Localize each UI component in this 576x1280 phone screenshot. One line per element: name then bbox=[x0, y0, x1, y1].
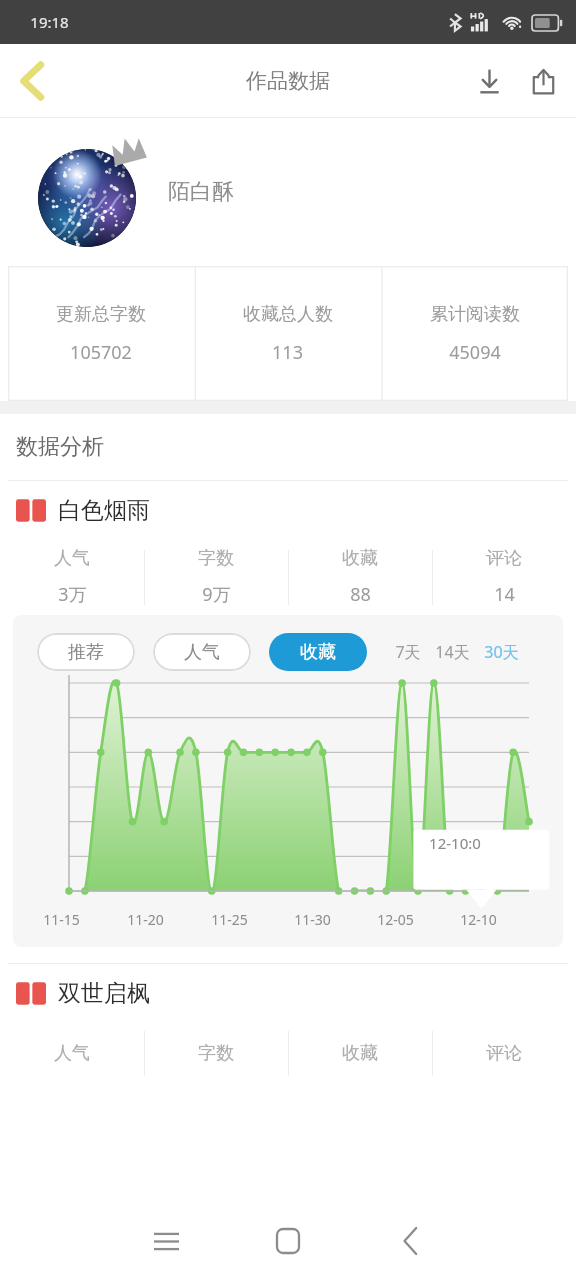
button[interactable]: 收藏总人数 bbox=[194, 266, 381, 401]
button[interactable]: 收藏 bbox=[288, 1022, 432, 1084]
staticText: 88 bbox=[350, 582, 371, 607]
staticText: 11-20 bbox=[127, 910, 164, 929]
button[interactable]: 更新总字数 bbox=[8, 266, 194, 401]
button[interactable]: Recent apps bbox=[138, 1213, 194, 1269]
staticText: 11-30 bbox=[294, 910, 331, 929]
staticText: 45094 bbox=[449, 340, 501, 365]
staticText: 累计阅读数 bbox=[430, 303, 520, 326]
staticText: 收藏 bbox=[300, 641, 336, 664]
button[interactable]: 收藏 bbox=[288, 539, 432, 615]
staticText: 收藏 bbox=[342, 1042, 378, 1065]
button[interactable]: Share bbox=[516, 54, 570, 108]
staticText: 14 bbox=[494, 582, 515, 607]
staticText: 11-25 bbox=[211, 910, 248, 929]
staticText: 收藏 bbox=[342, 547, 378, 570]
staticText: 人气 bbox=[54, 1042, 90, 1065]
button[interactable]: 推荐 bbox=[37, 633, 135, 671]
staticText: 双世启枫 bbox=[58, 979, 150, 1008]
button[interactable]: 人气 bbox=[0, 1022, 144, 1084]
staticText: 113 bbox=[272, 340, 303, 365]
staticText: 人气 bbox=[184, 641, 220, 664]
staticText: 字数 bbox=[198, 1042, 234, 1065]
staticText: 9万 bbox=[202, 582, 231, 607]
button[interactable]: 字数 bbox=[144, 539, 288, 615]
button[interactable]: 收藏 bbox=[269, 633, 367, 671]
staticText: 11-15 bbox=[43, 910, 80, 929]
button[interactable]: Back bbox=[382, 1213, 438, 1269]
button[interactable]: 白色烟雨 bbox=[0, 481, 576, 539]
staticText: 字数 bbox=[198, 547, 234, 570]
button[interactable]: 7天 bbox=[395, 641, 421, 663]
button[interactable]: 双世启枫 bbox=[0, 964, 576, 1022]
staticText: 人气 bbox=[54, 547, 90, 570]
button[interactable]: 累计阅读数 bbox=[381, 266, 568, 401]
staticText: 3万 bbox=[58, 582, 87, 607]
staticText: 作品数据 bbox=[246, 68, 330, 94]
staticText: 19:18 bbox=[30, 12, 69, 32]
button[interactable]: Back bbox=[4, 52, 62, 110]
staticText: 12-05 bbox=[377, 910, 414, 929]
button[interactable]: 人气 bbox=[153, 633, 251, 671]
staticText: 更新总字数 bbox=[56, 303, 146, 326]
staticText: 评论 bbox=[486, 1042, 522, 1065]
staticText: 白色烟雨 bbox=[58, 496, 150, 525]
button[interactable]: 评论 bbox=[432, 1022, 576, 1084]
button[interactable]: 字数 bbox=[144, 1022, 288, 1084]
staticText: 12-10:0 bbox=[429, 833, 481, 853]
button[interactable]: 人气 bbox=[0, 539, 144, 615]
staticText: 105702 bbox=[70, 340, 132, 365]
staticText: 数据分析 bbox=[16, 433, 104, 461]
staticText: 收藏总人数 bbox=[243, 303, 333, 326]
button[interactable]: 陌白酥 bbox=[0, 118, 576, 266]
button[interactable]: 30天 bbox=[484, 641, 519, 663]
button[interactable]: 评论 bbox=[432, 539, 576, 615]
button[interactable]: Download bbox=[462, 54, 516, 108]
staticText: 12-10 bbox=[460, 910, 497, 929]
staticText: 评论 bbox=[486, 547, 522, 570]
button[interactable]: 14天 bbox=[435, 641, 470, 663]
staticText: 推荐 bbox=[68, 641, 104, 664]
button[interactable]: Home bbox=[260, 1213, 316, 1269]
staticText: 陌白酥 bbox=[168, 178, 234, 206]
